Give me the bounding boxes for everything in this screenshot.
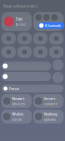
staticText: Bluetooth (45, 23, 61, 28)
staticText: devices (12, 101, 25, 106)
staticText: connect (44, 101, 57, 106)
button[interactable]: Focus (1, 84, 63, 92)
button[interactable]: Timer (17, 32, 32, 44)
button[interactable]: Calculator (33, 32, 48, 44)
staticText: Artist (15, 21, 25, 27)
staticText: Focus (9, 86, 19, 91)
staticText: Restart (12, 96, 24, 101)
button[interactable]: Wi-Fi (51, 14, 58, 21)
button[interactable]: Volume (1, 72, 51, 81)
button[interactable]: Screen Record (1, 46, 16, 58)
staticText: Wallet (12, 111, 23, 116)
staticText: Title (15, 16, 22, 21)
staticText: options (44, 116, 56, 122)
button[interactable]: Restart (1, 94, 32, 108)
button[interactable]: Nothing (33, 109, 63, 123)
button[interactable]: Notes (33, 46, 48, 58)
button[interactable]: Low Power Mode (52, 72, 63, 83)
button[interactable]: Remote (49, 46, 63, 58)
button[interactable]: Smart (33, 94, 63, 108)
staticText: Nothing (44, 111, 57, 116)
button[interactable]: Magnifier (17, 46, 32, 58)
button[interactable]: Cellular Data (43, 14, 50, 21)
button[interactable]: Screen Mirroring (52, 59, 63, 70)
button[interactable]: Camera (49, 32, 63, 44)
staticText: Smart (44, 96, 55, 101)
button[interactable]: Title (1, 12, 32, 31)
staticText: cards (12, 116, 22, 122)
button[interactable]: Bluetooth (38, 22, 64, 29)
button[interactable]: Flashlight (1, 32, 16, 44)
button[interactable]: Airplane Mode (35, 14, 42, 21)
button[interactable]: Brightness (1, 61, 51, 70)
staticText: Route without orders (3, 3, 38, 9)
button[interactable]: Wallet (1, 109, 32, 123)
